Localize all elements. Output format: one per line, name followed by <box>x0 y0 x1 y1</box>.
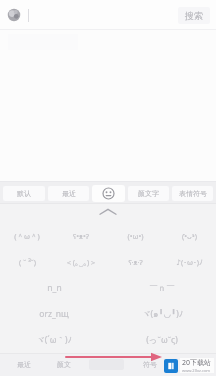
button[interactable]: Collapse panel <box>0 204 216 220</box>
staticText: (っ˘ω˘ς) <box>146 334 178 346</box>
staticText: 颜文字 <box>138 189 159 198</box>
staticText: 符号 <box>143 360 157 369</box>
staticText: 最近 <box>62 189 76 198</box>
button[interactable]: 符号 <box>130 353 169 376</box>
button[interactable]: 最近 <box>48 186 89 201</box>
staticText: (＾ω＾) <box>14 231 40 241</box>
button[interactable]: Emoji category <box>92 185 125 202</box>
staticText: ♪(･ω･)ﾉ <box>176 257 203 267</box>
button[interactable]: (•̀ᴗ•́) <box>162 222 216 249</box>
staticText: ヾ(๑╹◡╹)ﾉ <box>142 307 183 321</box>
button[interactable]: orz_nщ <box>0 301 108 327</box>
button[interactable]: (っ˘ω˘ς) <box>108 327 216 353</box>
staticText: www.20xz.com <box>182 368 211 373</box>
button[interactable]: (＾ω＾) <box>0 222 54 249</box>
staticText: orz_nщ <box>39 308 69 320</box>
button[interactable]: ＜(｡‿｡)＞ <box>54 249 108 275</box>
button[interactable]: ʕ·ᴥ·ʔ <box>108 249 162 275</box>
button[interactable]: ♪(･ω･)ﾉ <box>162 249 216 275</box>
staticText: ʕ•ᴥ•ʔ <box>73 231 89 241</box>
button[interactable]: 表情符号 <box>172 186 213 201</box>
staticText: ʕ·ᴥ·ʔ <box>128 257 143 267</box>
button[interactable]: 最近 <box>4 353 44 376</box>
staticText: ( ˘ ³˘) <box>19 257 36 267</box>
staticText: ＜(｡‿｡)＞ <box>65 257 97 267</box>
button[interactable]: ￣ｎ￣ <box>108 275 216 301</box>
button[interactable]: 默认 <box>3 186 45 201</box>
button[interactable]: App icon <box>6 7 22 23</box>
button[interactable]: ( ˘ ³˘) <box>0 249 54 275</box>
button[interactable]: n_n <box>0 275 108 301</box>
staticText: 搜索 <box>185 10 203 21</box>
staticText: 表情符号 <box>179 189 207 198</box>
button[interactable]: (•ω•) <box>108 222 162 249</box>
button[interactable]: 搜索 <box>178 7 210 24</box>
staticText: ￣ｎ￣ <box>149 283 175 294</box>
button[interactable]: 颜文 <box>44 353 83 376</box>
staticText: (•̀ᴗ•́) <box>182 231 197 241</box>
staticText: 颜文 <box>57 360 71 369</box>
staticText: n_n <box>47 282 62 294</box>
staticText: 20下载站 <box>182 358 212 368</box>
staticText: 最近 <box>17 360 31 369</box>
staticText: 默认 <box>17 189 31 198</box>
button[interactable]: ヾ(๑╹◡╹)ﾉ <box>108 301 216 327</box>
staticText: ヾ(´ω｀)ﾉ <box>36 334 72 346</box>
staticText: (•ω•) <box>127 231 144 241</box>
button[interactable]: 颜文字 <box>128 186 169 201</box>
button[interactable]: ヾ(´ω｀)ﾉ <box>0 327 108 353</box>
button[interactable]: ʕ•ᴥ•ʔ <box>54 222 108 249</box>
